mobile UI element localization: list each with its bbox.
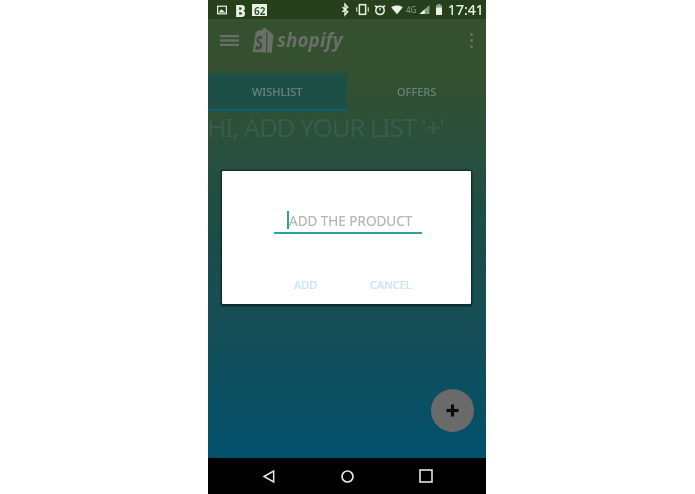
staticText: ADD THE PRODUCT (289, 212, 413, 230)
button[interactable]: WISHLIST (208, 73, 347, 109)
staticText: HI, ADD YOUR LIST '+' (207, 109, 444, 144)
button[interactable]: ADD (290, 273, 322, 296)
button[interactable]: Home (329, 458, 365, 494)
button[interactable]: Menu (212, 23, 246, 57)
button[interactable]: More options (456, 25, 486, 55)
staticText: 4G (406, 4, 417, 15)
staticText: OFFERS (397, 84, 437, 99)
button[interactable]: Recent apps (408, 458, 444, 494)
button[interactable]: OFFERS (347, 73, 486, 109)
staticText: B (235, 0, 246, 19)
button[interactable]: CANCEL (366, 273, 416, 296)
staticText: 17:41 (448, 0, 484, 19)
button[interactable]: Back (251, 458, 287, 494)
staticText: ADD (294, 277, 318, 292)
button[interactable]: Add product (431, 389, 474, 432)
staticText: CANCEL (370, 277, 412, 292)
staticText: WISHLIST (252, 84, 303, 99)
staticText: 62 (254, 4, 266, 16)
staticText: shopify (277, 27, 343, 53)
